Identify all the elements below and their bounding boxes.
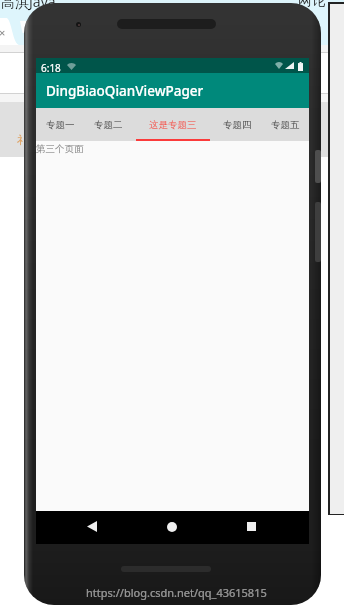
- button[interactable]: 专题二: [84, 108, 132, 141]
- staticText: 专题四: [223, 119, 252, 131]
- button[interactable]: Back: [82, 515, 102, 538]
- staticText: 第三个页面: [36, 143, 84, 155]
- staticText: 高淇Java: [1, 0, 56, 11]
- staticText: 专题五: [271, 119, 300, 131]
- staticText: 专题一: [46, 119, 75, 131]
- button[interactable]: Recents: [241, 515, 261, 538]
- button[interactable]: 专题一: [36, 108, 84, 141]
- staticText: 礻: [17, 133, 28, 147]
- staticText: ×: [0, 25, 6, 40]
- button[interactable]: 这是专题三: [132, 108, 213, 141]
- staticText: 6:18: [41, 61, 61, 75]
- staticText: 网论: [298, 0, 326, 10]
- button[interactable]: 专题四: [213, 108, 261, 141]
- button[interactable]: 专题五: [261, 108, 309, 141]
- staticText: DingBiaoQianViewPager: [46, 82, 204, 100]
- button[interactable]: Home: [162, 515, 182, 538]
- staticText: 专题二: [94, 119, 123, 131]
- staticText: https://blog.csdn.net/qq_43615815: [86, 585, 267, 600]
- staticText: 这是专题三: [149, 119, 197, 131]
